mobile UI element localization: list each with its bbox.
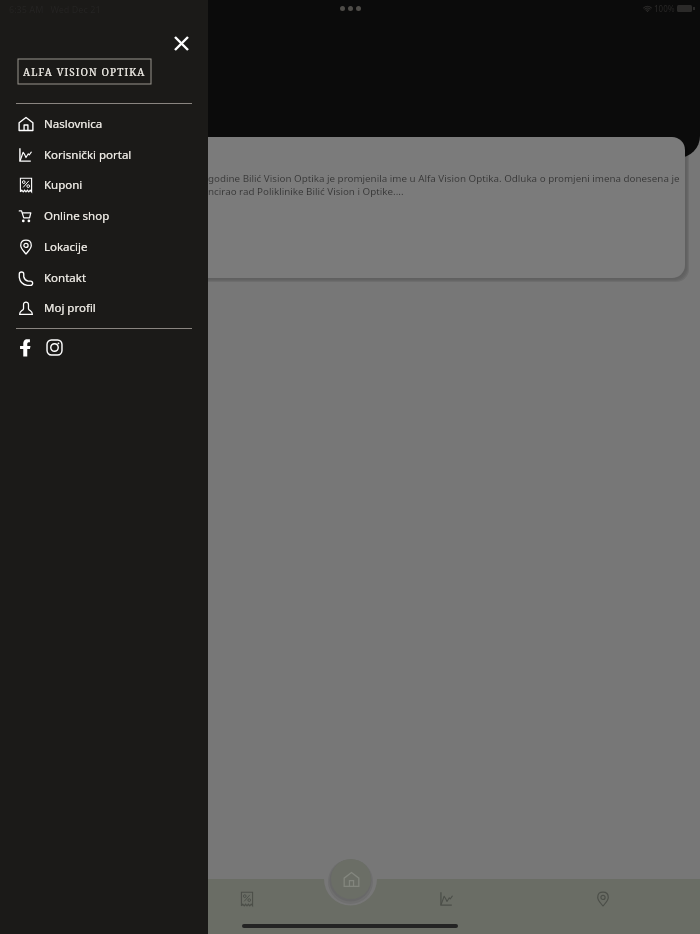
staticText: Online shop <box>44 208 110 224</box>
staticText: 100% <box>654 3 675 14</box>
button[interactable]: Korisnički portal <box>0 139 208 170</box>
button[interactable]: Kuponi <box>0 169 208 200</box>
staticText: Lokacije <box>44 239 88 255</box>
button[interactable] <box>208 137 685 278</box>
button[interactable]: Home <box>331 859 371 899</box>
button[interactable]: Coupons <box>227 879 267 919</box>
button[interactable]: Moj profil <box>0 292 208 323</box>
button[interactable]: Kontakt <box>0 262 208 293</box>
staticText: Naslovnica <box>44 116 103 132</box>
button[interactable]: Locations <box>583 879 623 919</box>
button[interactable]: Close <box>164 26 198 60</box>
staticText: godine Bilić Vision Optika je promjenila… <box>208 172 680 185</box>
staticText: Moj profil <box>44 300 96 316</box>
staticText: ALFA VISION OPTIKA <box>23 65 146 79</box>
button[interactable]: Close navigation drawer <box>208 0 700 934</box>
button[interactable]: Online shop <box>0 200 208 231</box>
staticText: Kontakt <box>44 270 87 286</box>
button[interactable]: Lokacije <box>0 231 208 262</box>
button[interactable]: Instagram <box>42 335 66 359</box>
button[interactable]: Portal <box>427 879 467 919</box>
staticText: Korisnički portal <box>44 147 132 163</box>
button[interactable]: Naslovnica <box>0 108 208 139</box>
staticText: Kuponi <box>44 177 83 193</box>
staticText: ncirao rad Poliklinike Bilić Vision i Op… <box>208 185 404 198</box>
button[interactable]: Facebook <box>14 335 38 359</box>
